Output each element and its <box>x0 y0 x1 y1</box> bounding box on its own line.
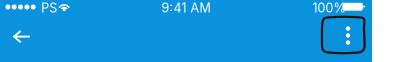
staticText: 9:41 AM <box>161 0 210 15</box>
staticText: PS <box>41 0 57 15</box>
button[interactable]: Back <box>0 14 44 58</box>
staticText: 100% <box>312 0 345 15</box>
button[interactable]: More options <box>326 14 370 58</box>
